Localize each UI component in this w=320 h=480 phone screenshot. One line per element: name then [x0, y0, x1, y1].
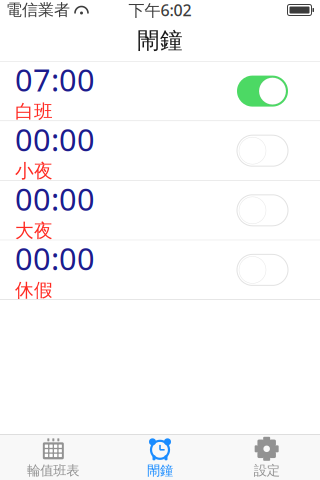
staticText: 休假 — [15, 279, 53, 302]
button[interactable]: 07:00 — [0, 62, 320, 121]
staticText: 下午6:02 — [128, 0, 191, 21]
staticText: 閙鐘 — [137, 27, 183, 54]
button[interactable]: 閙鐘 — [107, 435, 213, 480]
button[interactable]: 00:00 — [0, 121, 320, 181]
button[interactable]: 輪值班表 — [0, 435, 107, 480]
staticText: 00:00 — [15, 119, 95, 160]
staticText: 電信業者 — [6, 0, 70, 20]
staticText: 小夜 — [15, 160, 53, 182]
button[interactable]: 00:00 — [0, 181, 320, 240]
staticText: 00:00 — [15, 238, 95, 279]
staticText: 設定 — [254, 462, 280, 479]
button[interactable]: 00:00 — [0, 240, 320, 300]
staticText: 白班 — [15, 100, 53, 123]
staticText: 大夜 — [15, 219, 53, 242]
staticText: 07:00 — [15, 59, 95, 100]
button[interactable]: 設定 — [213, 435, 320, 480]
staticText: 輪值班表 — [27, 462, 79, 479]
staticText: 閙鐘 — [147, 462, 173, 479]
staticText: 00:00 — [15, 178, 95, 219]
